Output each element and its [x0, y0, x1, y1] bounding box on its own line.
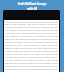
staticText: Craft Brilliant Essays with AI: [0, 2, 64, 10]
staticText: Introduction to the topic and its releva…: [5, 21, 58, 71]
